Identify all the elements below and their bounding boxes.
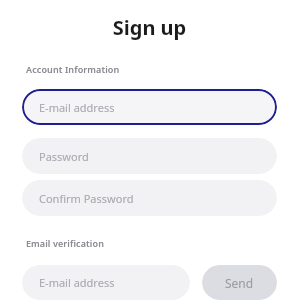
staticText: Confirm Password xyxy=(39,191,134,206)
button[interactable]: Confirm Password xyxy=(22,180,277,216)
staticText: E-mail address xyxy=(39,275,115,290)
button[interactable]: Password xyxy=(22,138,277,174)
staticText: Sign up xyxy=(0,14,299,41)
staticText: Account Information xyxy=(26,63,120,75)
staticText: Password xyxy=(39,149,89,164)
button[interactable]: E-mail address xyxy=(22,265,190,300)
button[interactable]: Send verification email xyxy=(202,265,277,300)
button[interactable]: E-mail address xyxy=(22,89,277,125)
staticText: E-mail address xyxy=(39,100,115,115)
staticText: Send xyxy=(225,275,254,291)
staticText: Email verification xyxy=(26,237,104,249)
